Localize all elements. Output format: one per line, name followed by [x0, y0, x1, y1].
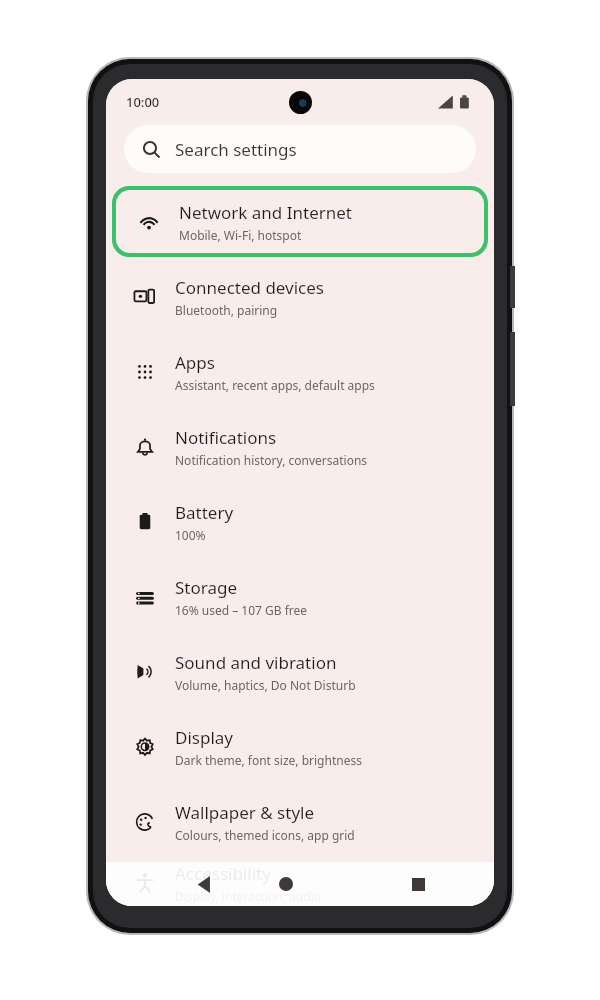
button[interactable]: Sound and vibration: [106, 634, 494, 709]
button[interactable]: Search settings: [124, 125, 476, 173]
staticText: Search settings: [175, 138, 297, 161]
button[interactable]: Notifications: [106, 409, 494, 484]
staticText: Bluetooth, pairing: [175, 302, 278, 318]
button[interactable]: Network and Internet: [116, 190, 484, 253]
staticText: Volume, haptics, Do Not Disturb: [175, 677, 356, 693]
staticText: Dark theme, font size, brightness: [175, 752, 362, 768]
staticText: Notifications: [175, 426, 277, 449]
staticText: Network and Internet: [179, 201, 352, 224]
staticText: Sound and vibration: [175, 651, 337, 674]
staticText: Wallpaper & style: [175, 801, 315, 824]
staticText: Apps: [175, 351, 215, 374]
staticText: Accessibility: [175, 862, 271, 885]
button[interactable]: Display: [106, 709, 494, 784]
staticText: Display, interaction, audio: [175, 888, 321, 904]
button[interactable]: Battery: [106, 484, 494, 559]
button[interactable]: Connected devices: [106, 259, 494, 334]
staticText: Connected devices: [175, 276, 325, 299]
button[interactable]: Recent apps: [398, 864, 438, 904]
button[interactable]: Back: [184, 864, 224, 904]
staticText: Mobile, Wi-Fi, hotspot: [179, 227, 302, 243]
staticText: 10:00: [126, 93, 160, 111]
button[interactable]: Home: [266, 864, 306, 904]
button[interactable]: Wallpaper & style: [106, 784, 494, 859]
staticText: Storage: [175, 576, 238, 599]
staticText: Battery: [175, 501, 234, 524]
staticText: Colours, themed icons, app grid: [175, 827, 355, 843]
staticText: Notification history, conversations: [175, 452, 368, 468]
button[interactable]: Accessibility: [106, 859, 494, 906]
staticText: 16% used – 107 GB free: [175, 602, 308, 618]
staticText: 100%: [175, 527, 206, 543]
button[interactable]: Apps: [106, 334, 494, 409]
button[interactable]: Storage: [106, 559, 494, 634]
staticText: Display: [175, 726, 233, 749]
staticText: Assistant, recent apps, default apps: [175, 377, 375, 393]
